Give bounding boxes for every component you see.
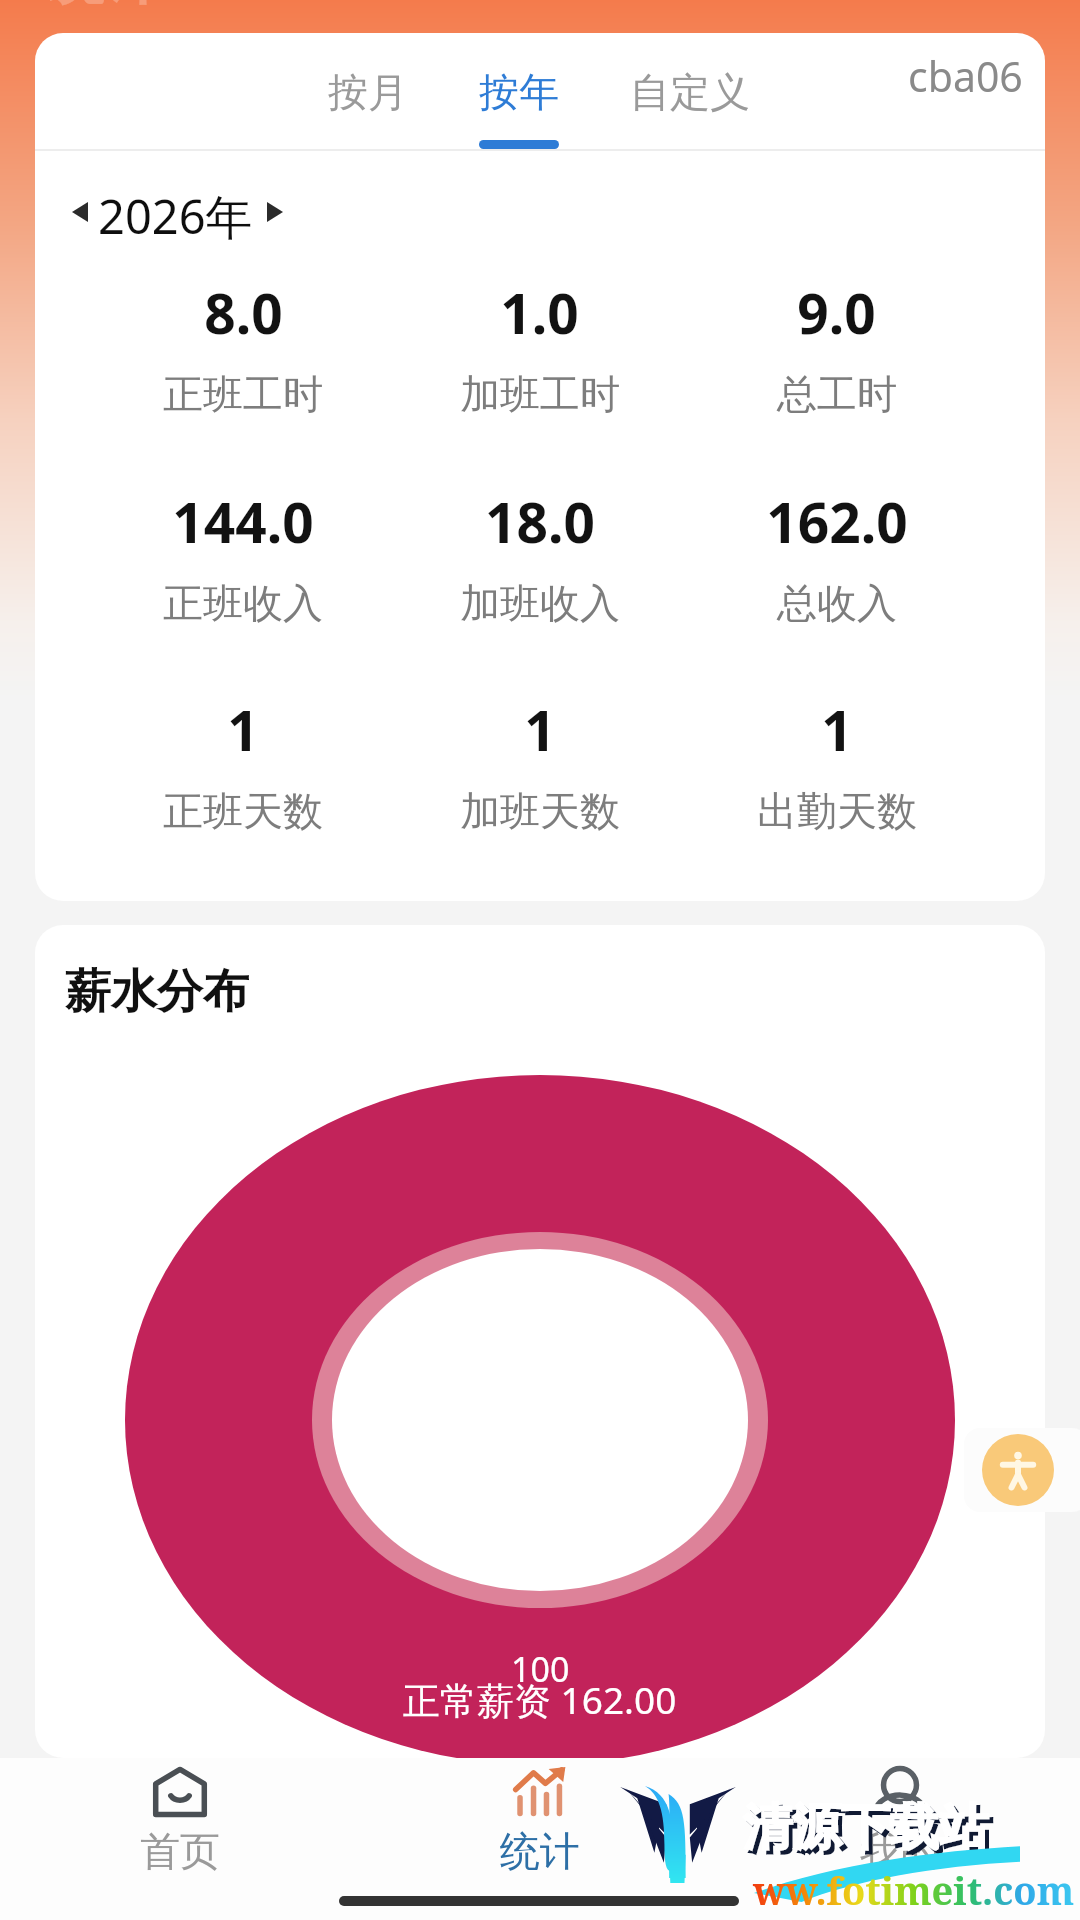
staticText: 100: [511, 1646, 570, 1692]
staticText: 统计: [500, 1826, 580, 1876]
button[interactable]: 我的: [720, 1758, 1080, 1920]
staticText: 清源下载站: [747, 1801, 992, 1863]
button[interactable]: 按年: [459, 67, 579, 153]
staticText: 首页: [140, 1826, 220, 1876]
staticText: cba06: [908, 48, 1023, 104]
staticText: 正班工时: [163, 369, 323, 419]
button[interactable]: 首页: [0, 1758, 360, 1920]
button[interactable]: 2026年: [65, 173, 325, 253]
button[interactable]: 按月: [308, 67, 428, 153]
staticText: 8.0: [204, 275, 283, 350]
button[interactable]: 统计: [360, 1758, 720, 1920]
staticText: 按年: [479, 67, 559, 117]
staticText: 我的: [860, 1826, 940, 1876]
staticText: 总工时: [777, 369, 897, 419]
staticText: 加班工时: [460, 369, 620, 419]
staticText: 清源下载站: [743, 1797, 988, 1859]
staticText: 9.0: [797, 275, 876, 350]
staticText: 正班收入: [163, 578, 323, 628]
staticText: 正班天数: [163, 786, 323, 836]
staticText: 144.0: [172, 484, 314, 559]
button[interactable]: Accessibility: [964, 1428, 1080, 1512]
staticText: 总收入: [777, 578, 897, 628]
staticText: 正常薪资 162.00: [403, 1674, 677, 1725]
staticText: 1: [821, 692, 853, 767]
button[interactable]: 自定义: [612, 67, 768, 153]
staticText: 18.0: [485, 484, 595, 559]
staticText: 1: [227, 692, 259, 767]
staticText: 统计: [48, 0, 160, 15]
staticText: 薪水分布: [65, 963, 249, 1021]
staticText: 自定义: [630, 67, 750, 117]
staticText: ww.fotimeit.com: [753, 1864, 1075, 1916]
staticText: 2026年: [98, 184, 253, 248]
staticText: 1: [524, 692, 556, 767]
staticText: 加班收入: [460, 578, 620, 628]
staticText: 出勤天数: [757, 786, 917, 836]
staticText: 1.0: [500, 275, 579, 350]
staticText: 按月: [328, 67, 408, 117]
staticText: 162.0: [766, 484, 908, 559]
staticText: 加班天数: [460, 786, 620, 836]
